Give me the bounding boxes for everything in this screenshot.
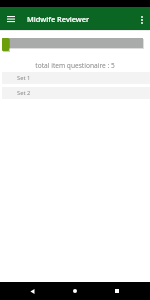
button[interactable]: More options: [133, 7, 150, 30]
button[interactable]: Back: [22, 282, 43, 300]
staticText: Set 1: [17, 74, 31, 82]
button[interactable]: Home: [64, 282, 85, 300]
staticText: Set 2: [17, 89, 31, 97]
staticText: Midwife Reviewer: [27, 14, 90, 24]
button[interactable]: Recent apps: [106, 282, 127, 300]
staticText: total item questionaire : 5: [0, 61, 150, 70]
button[interactable]: Set 2: [2, 87, 150, 99]
button[interactable]: Open navigation drawer: [0, 7, 21, 30]
button[interactable]: Set 1: [2, 72, 150, 84]
